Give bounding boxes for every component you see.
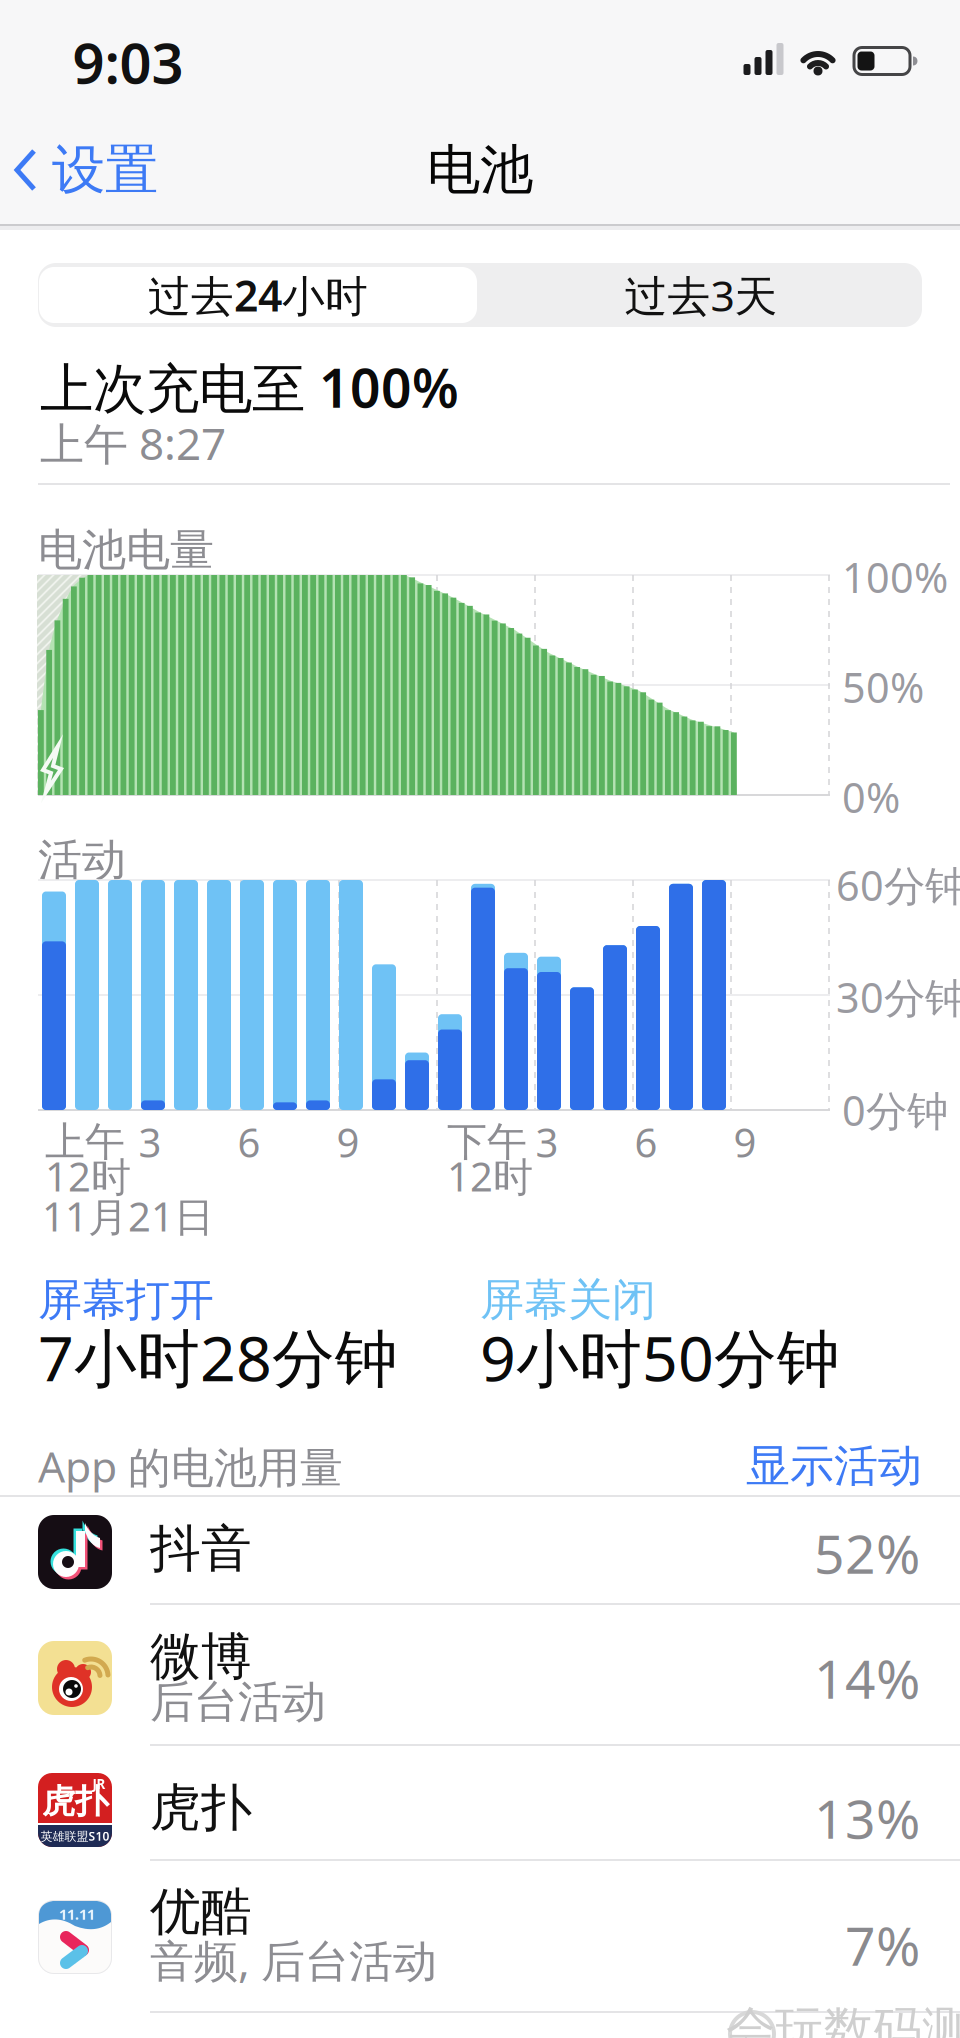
staticText: 过去3天 (624, 267, 777, 323)
staticText: 50% (842, 660, 924, 714)
staticText: 上次充电至 100% (40, 352, 459, 422)
staticText: 100% (842, 550, 948, 604)
staticText: 后台活动 (150, 1675, 326, 1729)
button[interactable]: 虎扑 (0, 1745, 960, 1860)
button[interactable]: 返回设置 (14, 137, 158, 203)
staticText: 12时 (447, 1149, 533, 1202)
button[interactable]: 显示活动 (746, 1439, 922, 1493)
staticText: 虎扑 (150, 1777, 252, 1839)
button[interactable]: 优酷 (0, 1860, 960, 2012)
staticText: 9 (336, 1115, 359, 1168)
staticText: 抖音 (150, 1518, 252, 1580)
staticText: JR (92, 1775, 105, 1793)
staticText: 9 (733, 1115, 756, 1168)
staticText: 7小时28分钟 (38, 1315, 398, 1399)
staticText: 优酷 (150, 1881, 252, 1943)
staticText: 微博 (150, 1626, 252, 1688)
staticText: 英雄联盟S10 (40, 1828, 109, 1844)
button[interactable]: 抖音 (0, 1496, 960, 1604)
staticText: 6 (237, 1115, 260, 1168)
staticText: 下午 (447, 1117, 527, 1166)
staticText: 6 (634, 1115, 657, 1168)
staticText: 0分钟 (842, 1083, 948, 1137)
staticText: 电池 (427, 137, 533, 203)
staticText: 11.11 (59, 1904, 95, 1924)
staticText: 显示活动 (746, 1439, 922, 1493)
staticText: 0% (842, 770, 900, 824)
staticText: 60分钟 (836, 858, 960, 912)
staticText: 13% (814, 1783, 920, 1853)
button[interactable]: 微博 (0, 1604, 960, 1745)
staticText: 上午 8:27 (40, 414, 226, 472)
staticText: 音频, 后台活动 (150, 1931, 437, 1989)
staticText: 虎扑 (42, 1781, 108, 1822)
staticText: 3 (535, 1115, 558, 1168)
staticText: 屏幕打开 (38, 1273, 214, 1327)
staticText: 30分钟 (836, 970, 960, 1024)
staticText: 3 (138, 1115, 161, 1168)
staticText: 屏幕关闭 (480, 1273, 656, 1327)
staticText: 上午 (45, 1117, 125, 1166)
staticText: 会玩数码测评 (726, 2000, 960, 2038)
staticText: 9:03 (72, 25, 183, 99)
staticText: 14% (814, 1643, 920, 1713)
staticText: 12时 (45, 1149, 131, 1202)
staticText: 11月21日 (42, 1189, 214, 1242)
staticText: 过去24小时 (148, 267, 368, 323)
staticText: 活动 (38, 833, 126, 887)
staticText: 电池电量 (38, 523, 214, 577)
staticText: 52% (814, 1518, 920, 1588)
staticText: 7% (845, 1910, 920, 1980)
staticText: 设置 (52, 137, 158, 203)
staticText: 9小时50分钟 (480, 1315, 840, 1399)
button[interactable]: 过去24小时 (39, 267, 477, 323)
button[interactable]: 过去3天 (491, 267, 911, 323)
staticText: App 的电池用量 (38, 1438, 343, 1494)
